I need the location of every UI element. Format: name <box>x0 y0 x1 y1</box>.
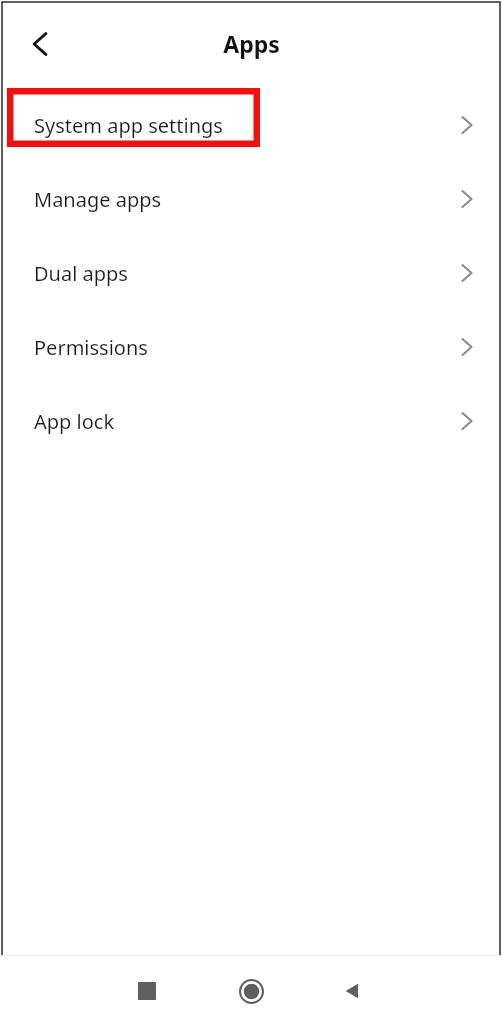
button[interactable]: App lock <box>0 384 503 458</box>
button[interactable]: Recent apps <box>123 967 171 1015</box>
staticText: App lock <box>34 408 115 435</box>
staticText: Manage apps <box>34 186 162 213</box>
button[interactable]: Back <box>18 22 62 66</box>
staticText: System app settings <box>34 112 223 139</box>
staticText: Apps <box>0 28 503 59</box>
button[interactable]: Dual apps <box>0 236 503 310</box>
button[interactable]: Home <box>227 967 275 1015</box>
button[interactable]: Manage apps <box>0 162 503 236</box>
staticText: Permissions <box>34 334 148 361</box>
button[interactable]: System app settings <box>0 88 503 162</box>
button[interactable]: Permissions <box>0 310 503 384</box>
button[interactable]: Back <box>328 967 376 1015</box>
staticText: Dual apps <box>34 260 128 287</box>
